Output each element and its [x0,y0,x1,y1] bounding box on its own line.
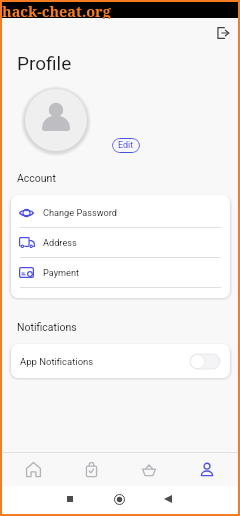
staticText: Edit [118,140,134,151]
staticText: Change Password [43,207,118,218]
staticText: Address [43,237,77,248]
staticText: App Notifications [20,356,94,367]
button[interactable]: Home [8,452,58,486]
button[interactable]: Profile [182,452,232,486]
button[interactable]: Profile photo [22,86,90,154]
staticText: Payment [43,267,80,278]
button[interactable]: Edit [112,138,140,153]
button[interactable]: Address [11,228,230,258]
button[interactable]: Log out [212,22,234,44]
button[interactable]: Orders [66,452,116,486]
staticText: Notifications [17,321,77,333]
button[interactable]: Cart [124,452,174,486]
button[interactable]: App Notifications [11,344,230,378]
button[interactable]: Change Password [11,198,230,228]
staticText: Profile [17,52,72,74]
button[interactable]: App notifications toggle [189,353,221,370]
button[interactable]: Payment [11,258,230,288]
staticText: hack-cheat.org [2,1,111,19]
staticText: Account [17,172,56,184]
